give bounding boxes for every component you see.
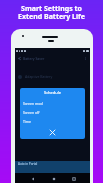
button[interactable]: Close — [48, 128, 57, 137]
button[interactable]: Screen mod — [20, 99, 85, 108]
button[interactable]: Screen off — [20, 108, 85, 117]
button[interactable]: Recents — [69, 174, 78, 183]
button[interactable]: Back — [28, 174, 37, 183]
staticText: Screen off — [23, 110, 40, 115]
staticText: Time — [23, 119, 32, 124]
button[interactable]: Home — [49, 174, 58, 183]
staticText: Auto in Portal — [18, 162, 38, 166]
staticText: Smart Settings to Extend Battery Life — [0, 4, 103, 21]
button[interactable]: More options — [84, 57, 87, 60]
button[interactable]: Time — [20, 117, 85, 126]
button[interactable]: Adaptive Battery — [15, 72, 90, 81]
button[interactable]: Battery Saver — [15, 54, 90, 63]
staticText: Screen mod — [23, 101, 43, 106]
staticText: Adaptive Battery — [25, 74, 53, 79]
staticText: Battery Saver — [23, 56, 45, 61]
staticText: Schedule — [20, 90, 85, 95]
